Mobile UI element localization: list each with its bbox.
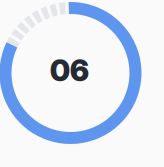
- staticText: 06: [50, 53, 89, 88]
